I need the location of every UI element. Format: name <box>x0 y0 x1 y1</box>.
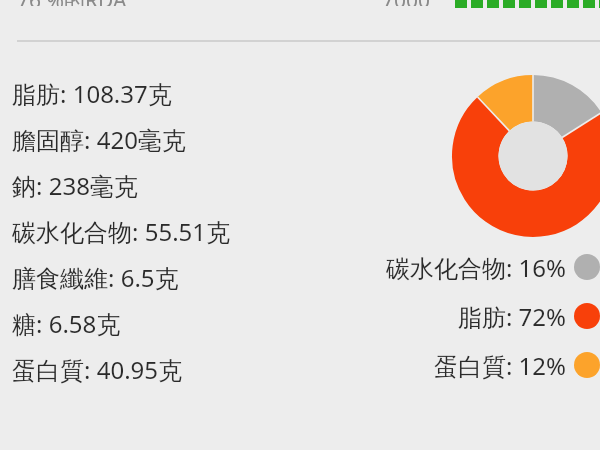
staticText: 脂肪: 72% <box>300 300 566 333</box>
staticText: 蛋白質: 12% <box>300 349 566 382</box>
button[interactable]: 鈉: 238毫克 <box>12 162 138 208</box>
staticText: 蛋白質: 40.95克 <box>12 353 183 386</box>
staticText: 鈉: 238毫克 <box>12 169 138 202</box>
button[interactable]: 糖: 6.58克 <box>12 300 121 346</box>
staticText: 膳食纖維: 6.5克 <box>12 261 179 294</box>
staticText: 76 %的RDA <box>17 0 127 6</box>
staticText: 7000 <box>382 0 431 6</box>
button[interactable]: 脂肪: 108.37克 <box>12 70 172 116</box>
button[interactable]: 76 %的RDA <box>0 0 600 20</box>
staticText: 糖: 6.58克 <box>12 307 121 340</box>
staticText: 碳水化合物: 16% <box>300 251 566 284</box>
other: Macronutrient donut chart <box>452 75 600 239</box>
button[interactable]: 蛋白質: 12% <box>300 348 600 382</box>
staticText: 膽固醇: 420毫克 <box>12 123 186 156</box>
button[interactable]: 膽固醇: 420毫克 <box>12 116 186 162</box>
staticText: 脂肪: 108.37克 <box>12 77 172 110</box>
button[interactable]: 碳水化合物: 16% <box>300 250 600 284</box>
button[interactable]: 脂肪: 72% <box>300 299 600 333</box>
button[interactable]: 膳食纖維: 6.5克 <box>12 254 179 300</box>
button[interactable]: 蛋白質: 40.95克 <box>12 346 183 392</box>
button[interactable]: 碳水化合物: 55.51克 <box>12 208 231 254</box>
staticText: 碳水化合物: 55.51克 <box>12 215 231 248</box>
